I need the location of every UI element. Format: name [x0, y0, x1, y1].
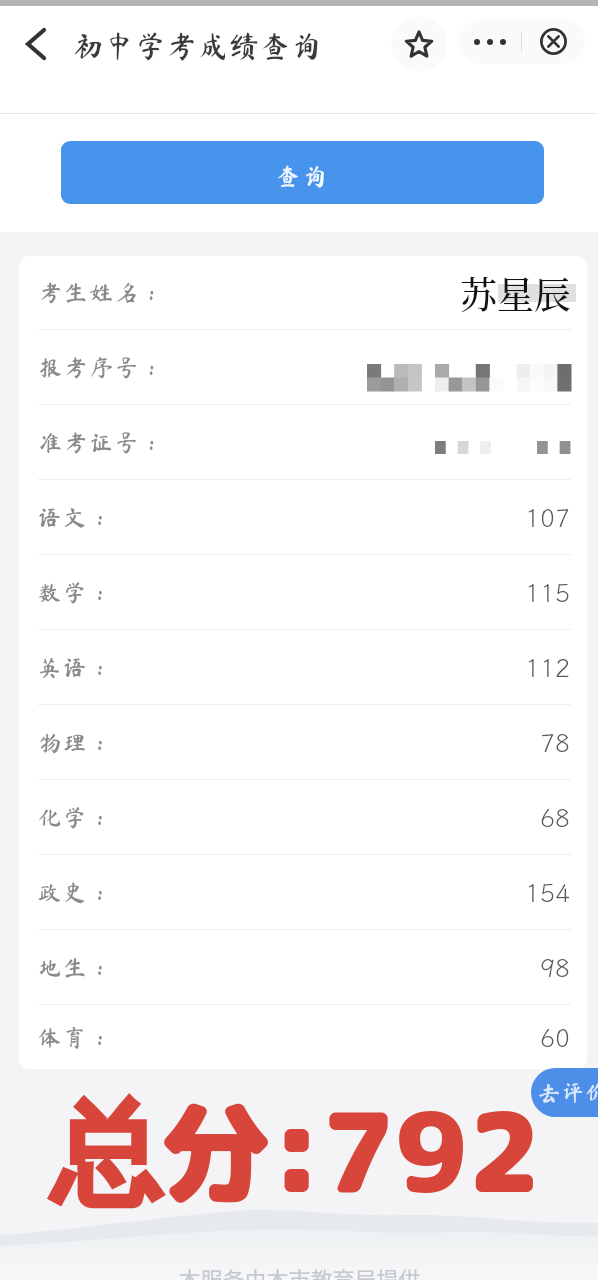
staticText: 60	[540, 1021, 571, 1054]
staticText: 考生姓名：	[38, 281, 164, 304]
staticText: 68	[540, 801, 571, 834]
button[interactable]: Favorite	[391, 16, 447, 72]
button[interactable]: More options	[459, 19, 521, 64]
button[interactable]: 去评价	[531, 1068, 598, 1117]
staticText: 英语：	[38, 656, 114, 679]
staticText: 准考证号：	[38, 431, 164, 454]
staticText: 总分:792	[51, 1074, 541, 1227]
staticText: 数学：	[38, 581, 114, 604]
staticText: 154	[525, 876, 571, 909]
staticText: 地生：	[38, 956, 114, 979]
staticText: 115	[525, 576, 571, 609]
staticText: 化学：	[38, 806, 114, 829]
staticText: 查询	[276, 164, 330, 188]
staticText: 107	[525, 501, 571, 534]
staticText: 98	[540, 951, 571, 984]
staticText: 语文：	[38, 506, 114, 529]
button[interactable]: Close	[522, 19, 585, 64]
staticText: 物理：	[38, 731, 114, 754]
staticText: 报考序号：	[38, 356, 164, 379]
staticText: 政史：	[38, 881, 114, 904]
staticText: 本服务由本市教育局提供	[178, 1262, 421, 1280]
button[interactable]: Back	[8, 20, 56, 68]
staticText: 112	[525, 651, 571, 684]
staticText: 78	[540, 726, 571, 759]
button[interactable]: 查询	[61, 141, 544, 204]
staticText: 去评价	[538, 1082, 598, 1104]
staticText: 苏星辰	[460, 266, 571, 319]
staticText: 初中学考成绩查询	[73, 31, 323, 61]
staticText: 体育：	[38, 1026, 114, 1049]
